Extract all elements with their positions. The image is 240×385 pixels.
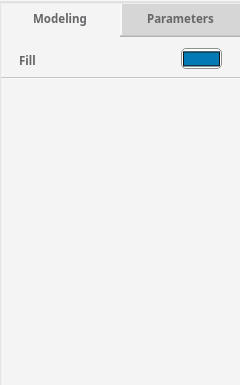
button[interactable]: Modeling <box>0 0 120 37</box>
staticText: Modeling <box>33 11 87 27</box>
button[interactable]: Parameters <box>120 0 240 37</box>
staticText: Fill <box>19 53 36 69</box>
button[interactable]: Fill <box>0 37 240 77</box>
staticText: Parameters <box>147 11 214 27</box>
button[interactable]: Fill colour <box>180 47 223 70</box>
